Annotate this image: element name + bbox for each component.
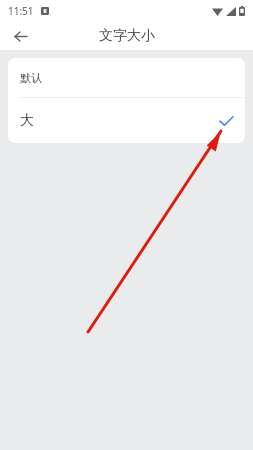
button[interactable]: 大 xyxy=(8,98,245,143)
staticText: 文字大小 xyxy=(99,27,155,45)
staticText: 默认 xyxy=(20,71,42,85)
button[interactable]: Back xyxy=(6,22,34,50)
staticText: 大 xyxy=(20,112,34,130)
staticText: 11:51 xyxy=(8,4,34,18)
button[interactable]: 默认 xyxy=(8,58,245,97)
